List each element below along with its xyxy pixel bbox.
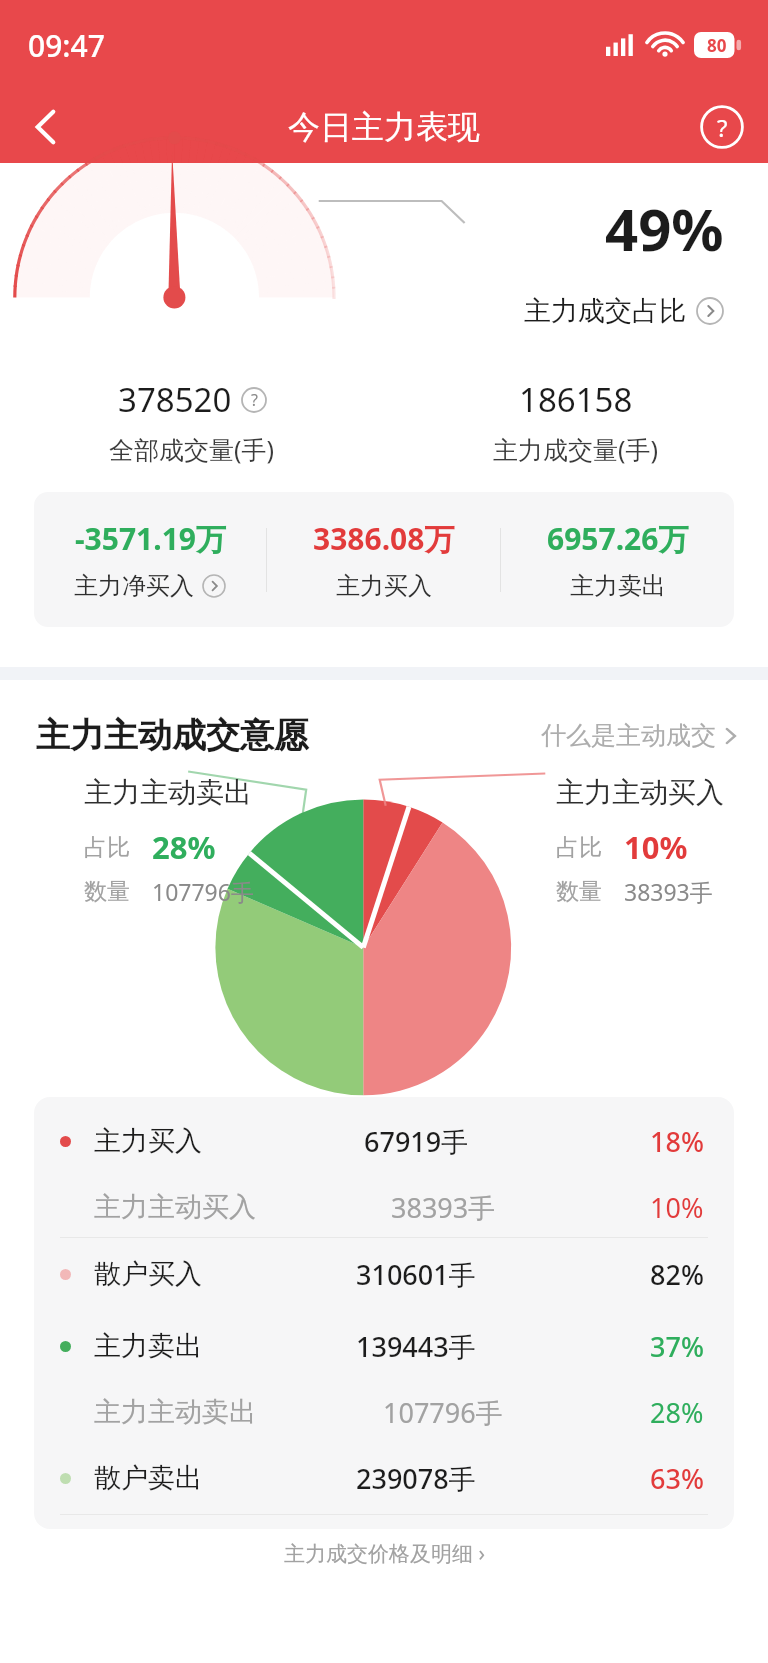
staticText: 37% — [650, 1328, 704, 1365]
staticText: 主力成交占比 — [524, 294, 686, 328]
staticText: 散户买入 — [94, 1257, 202, 1291]
button[interactable]: 3386.08万 — [267, 518, 500, 601]
button[interactable]: 6957.26万 — [501, 518, 734, 601]
staticText: 67919手 — [364, 1123, 469, 1160]
button[interactable]: 主力买入 — [34, 1105, 734, 1177]
button[interactable]: 什么是主动成交 — [541, 720, 738, 751]
staticText: 主力主动成交意愿 — [36, 714, 308, 757]
staticText: 38393手 — [624, 876, 713, 907]
staticText: 38393手 — [391, 1189, 496, 1226]
staticText: 63% — [650, 1460, 704, 1497]
staticText: 主力买入 — [336, 571, 432, 601]
button[interactable]: 散户卖出 — [34, 1442, 734, 1514]
staticText: -3571.19万 — [75, 518, 226, 559]
staticText: 主力买入 — [94, 1124, 202, 1158]
button[interactable]: -3571.19万 — [34, 518, 266, 601]
staticText: 10% — [650, 1189, 704, 1226]
staticText: 占比 — [556, 833, 602, 862]
staticText: 107796手 — [383, 1394, 503, 1431]
staticText: 主力净买入 — [74, 571, 194, 601]
button[interactable]: 主力卖出 — [34, 1310, 734, 1382]
staticText: 全部成交量(手) — [109, 432, 275, 466]
staticText: 主力主动买入 — [94, 1190, 256, 1224]
staticText: 82% — [650, 1256, 704, 1293]
staticText: 散户卖出 — [94, 1461, 202, 1495]
staticText: 主力成交价格及明细 › — [284, 1539, 485, 1568]
staticText: 数量 — [84, 877, 130, 906]
staticText: 80 — [707, 34, 727, 57]
button[interactable]: Help — [676, 90, 768, 163]
staticText: 主力卖出 — [570, 571, 666, 601]
staticText: 主力主动卖出 — [94, 1395, 256, 1429]
staticText: 数量 — [556, 877, 602, 906]
staticText: ? — [251, 389, 258, 411]
staticText: 310601手 — [356, 1256, 476, 1293]
staticText: 09:47 — [28, 25, 105, 66]
staticText: 107796手 — [152, 876, 254, 907]
staticText: ? — [717, 111, 728, 144]
staticText: 主力主动买入 — [556, 775, 724, 810]
staticText: 占比 — [84, 833, 130, 862]
staticText: 186158 — [519, 377, 633, 422]
staticText: 主力成交量(手) — [493, 432, 659, 466]
staticText: 主力主动卖出 — [84, 775, 252, 810]
button[interactable]: 主力主动买入 — [34, 1177, 734, 1237]
button[interactable]: Back — [0, 90, 92, 163]
button[interactable]: 说明 — [241, 387, 267, 413]
staticText: 49% — [605, 189, 724, 268]
staticText: 18% — [650, 1123, 704, 1160]
staticText: 378520 — [118, 377, 232, 422]
staticText: 6957.26万 — [547, 518, 689, 559]
staticText: 28% — [650, 1394, 704, 1431]
staticText: 什么是主动成交 — [541, 720, 716, 751]
staticText: 主力卖出 — [94, 1329, 202, 1363]
staticText: 今日主力表现 — [288, 107, 480, 147]
staticText: 28% — [152, 826, 216, 868]
staticText: 239078手 — [356, 1460, 476, 1497]
button[interactable]: 散户买入 — [34, 1238, 734, 1310]
button[interactable]: 主力主动卖出 — [34, 1382, 734, 1442]
staticText: 3386.08万 — [313, 518, 455, 559]
button[interactable]: 主力成交占比 — [524, 294, 724, 328]
staticText: 10% — [624, 826, 688, 868]
staticText: 139443手 — [356, 1328, 476, 1365]
